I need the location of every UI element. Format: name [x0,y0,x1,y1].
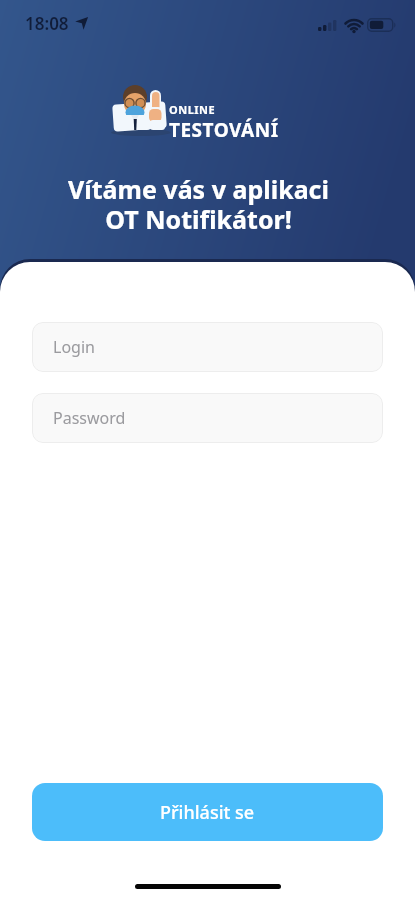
staticText: TESTOVÁNÍ [169,117,279,143]
staticText: Login [53,336,95,358]
button[interactable]: Login [32,322,383,372]
staticText: 18:08 [25,12,69,35]
staticText: Password [53,407,126,429]
button[interactable]: Přihlásit se [32,783,383,841]
button[interactable]: Password [32,393,383,443]
staticText: ONLINE [169,102,216,117]
staticText: Přihlásit se [160,800,255,825]
staticText: Vítáme vás v aplikaci OT Notifikátor! [0,172,406,237]
